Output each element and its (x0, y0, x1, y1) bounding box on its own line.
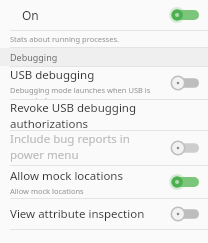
staticText: Allow mock locations (10, 168, 123, 184)
button[interactable]: Allow mock locations (0, 166, 208, 198)
other: On toggle (169, 7, 199, 23)
button[interactable]: View attribute inspection (0, 199, 208, 229)
staticText: Allow mock locations (10, 186, 84, 196)
staticText: Debugging mode launches when USB is conn… (10, 85, 163, 99)
staticText: Revoke USB debugging authorizations (10, 100, 199, 130)
staticText: Debugging (10, 51, 58, 63)
button[interactable]: Include bug reports in power menu (0, 131, 208, 165)
staticText: View attribute inspection (10, 206, 145, 222)
staticText: On (22, 7, 39, 23)
other: Include bug reports toggle (169, 140, 199, 156)
button[interactable]: Revoke USB debugging authorizations (0, 100, 208, 130)
staticText: USB debugging (10, 67, 95, 83)
other: USB debugging toggle (169, 75, 199, 91)
staticText: Stats about running processes. (10, 34, 120, 44)
other: Allow mock locations toggle (169, 174, 199, 190)
staticText: Include bug reports in power menu (10, 131, 163, 163)
button[interactable]: USB debugging (0, 67, 208, 99)
button[interactable]: On (0, 0, 208, 30)
other: View attribute inspection toggle (169, 206, 199, 222)
